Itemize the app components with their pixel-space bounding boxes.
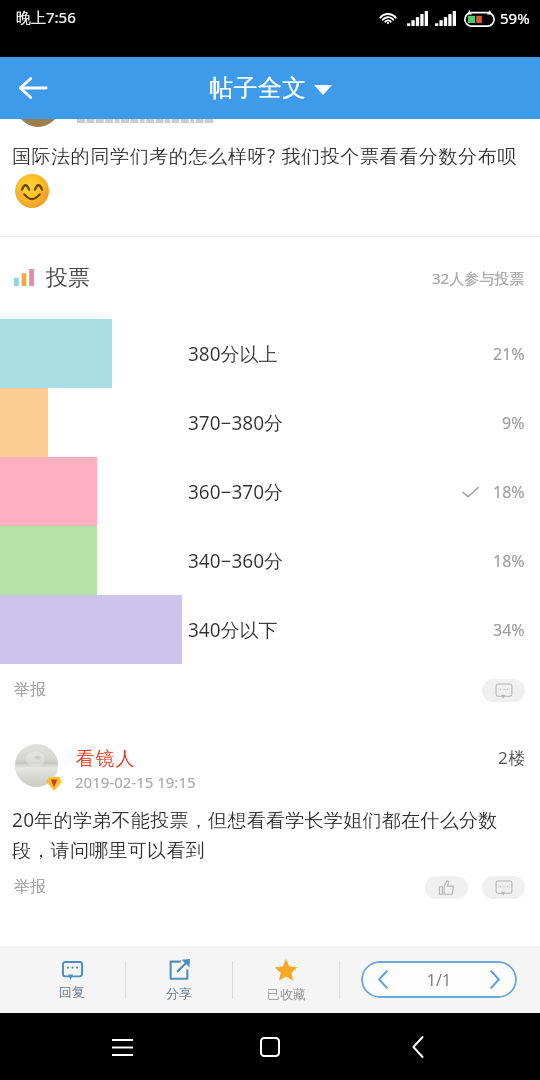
button[interactable]: 360−370分 bbox=[0, 457, 540, 526]
button[interactable]: Next page bbox=[473, 961, 517, 998]
button[interactable]: 340分以下 bbox=[0, 595, 540, 664]
button[interactable]: Previous page bbox=[361, 961, 405, 998]
staticText: 帖子全文 bbox=[209, 73, 307, 103]
staticText: 1/1 bbox=[405, 969, 473, 991]
button[interactable]: Like bbox=[425, 876, 468, 899]
button[interactable]: Comment bbox=[482, 876, 525, 899]
staticText: 看镜人 bbox=[75, 747, 135, 771]
staticText: 340−360分 bbox=[188, 548, 284, 574]
staticText: 9% bbox=[502, 412, 525, 434]
button[interactable]: 370−380分 bbox=[0, 388, 540, 457]
staticText: 18% bbox=[493, 481, 525, 503]
staticText: 18% bbox=[493, 550, 525, 572]
staticText: 国际法的同学们考的怎么样呀? 我们投个票看看分数分布呗 bbox=[12, 143, 517, 169]
staticText: 21% bbox=[493, 343, 525, 365]
button[interactable]: Home bbox=[244, 1021, 296, 1073]
button[interactable]: Previous page bbox=[361, 961, 517, 998]
staticText: 360−370分 bbox=[188, 479, 284, 505]
button[interactable]: 帖子全文 bbox=[201, 67, 340, 109]
staticText: 380分以上 bbox=[188, 341, 278, 367]
staticText: 晚上7:56 bbox=[16, 7, 76, 27]
button[interactable]: Back bbox=[0, 57, 66, 119]
button[interactable]: 举报 bbox=[14, 874, 46, 900]
staticText: 59% bbox=[500, 8, 530, 28]
staticText: 370−380分 bbox=[188, 410, 284, 436]
button[interactable]: 380分以上 bbox=[0, 319, 540, 388]
staticText: 2楼 bbox=[498, 746, 527, 769]
button[interactable]: Recents bbox=[96, 1021, 148, 1073]
button[interactable]: 已收藏 bbox=[233, 946, 339, 1013]
staticText: 20年的学弟不能投票，但想看看学长学姐们都在什么分数段，请问哪里可以看到 bbox=[12, 807, 532, 862]
button[interactable]: 分享 bbox=[126, 946, 232, 1013]
staticText: 2019-02-15 19:15 bbox=[75, 772, 196, 792]
staticText: 投票 bbox=[46, 264, 90, 292]
staticText: 分享 bbox=[166, 985, 192, 1001]
staticText: 已收藏 bbox=[267, 986, 306, 1002]
button[interactable]: Back bbox=[392, 1021, 444, 1073]
staticText: 回复 bbox=[59, 984, 85, 1000]
button[interactable]: Comment bbox=[482, 679, 525, 702]
staticText: 340分以下 bbox=[188, 617, 278, 643]
button[interactable]: 举报 bbox=[14, 677, 46, 703]
button[interactable]: 340−360分 bbox=[0, 526, 540, 595]
staticText: 34% bbox=[493, 619, 525, 641]
button[interactable]: 回复 bbox=[19, 946, 125, 1013]
staticText: 32人参与投票 bbox=[432, 268, 525, 288]
